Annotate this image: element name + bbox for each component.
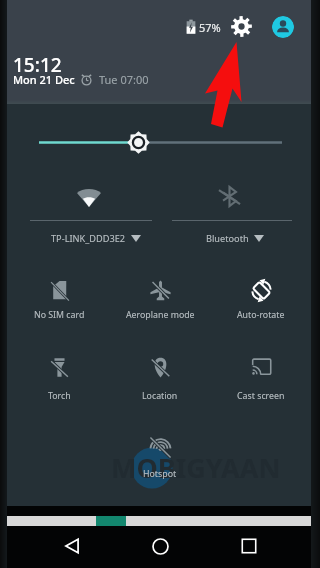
staticText: No SIM card xyxy=(34,309,85,321)
staticText: Location xyxy=(142,390,178,402)
staticText: MOBIGYAAN xyxy=(111,449,281,486)
button[interactable]: Back xyxy=(64,538,80,554)
button[interactable]: Wi-Fi xyxy=(77,187,101,207)
button[interactable]: Home xyxy=(152,538,169,555)
button[interactable]: Bluetooth xyxy=(221,186,238,207)
button[interactable]: TP-LINK_DDD3E2 xyxy=(51,232,141,245)
staticText: Cast screen xyxy=(237,390,285,402)
button[interactable]: Hotspot xyxy=(110,429,210,484)
staticText: Bluetooth xyxy=(206,232,249,245)
staticText: Auto-rotate xyxy=(237,309,285,321)
button[interactable]: Torch xyxy=(9,349,109,406)
staticText: Tue 07:00 xyxy=(99,72,149,87)
button[interactable]: Bluetooth xyxy=(206,232,264,245)
button[interactable]: User profile xyxy=(272,16,294,38)
staticText: TP-LINK_DDD3E2 xyxy=(51,232,126,245)
button[interactable]: Recent apps xyxy=(241,538,257,554)
staticText: 15:12 xyxy=(13,52,62,78)
staticText: Aeroplane mode xyxy=(126,309,195,321)
staticText: Mon 21 Dec xyxy=(13,72,75,87)
button[interactable]: Auto-rotate xyxy=(211,272,311,325)
staticText: 57% xyxy=(199,20,221,35)
button[interactable]: Settings xyxy=(231,16,252,37)
staticText: Hotspot xyxy=(143,468,177,480)
button[interactable]: Cast screen xyxy=(211,349,311,406)
button[interactable]: No SIM card xyxy=(9,272,109,325)
staticText: Torch xyxy=(48,390,71,402)
button[interactable]: Aeroplane mode xyxy=(110,272,210,325)
button[interactable]: Location xyxy=(110,349,210,406)
